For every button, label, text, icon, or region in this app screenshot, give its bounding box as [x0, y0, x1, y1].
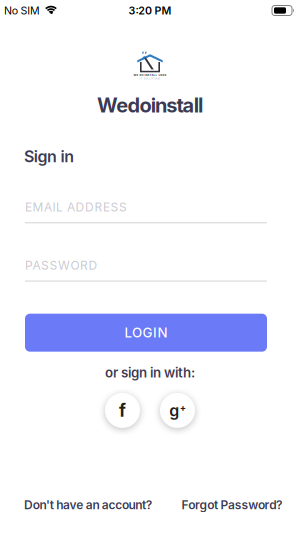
button[interactable]: LOGIN [25, 314, 267, 352]
staticText: Don't have an account? [24, 498, 153, 512]
button[interactable]: Don't have an account? [24, 498, 153, 512]
staticText: Wedoinstall [97, 93, 203, 117]
staticText: or sign in with: [105, 365, 195, 380]
staticText: + [180, 402, 186, 413]
button[interactable]: Sign in with Facebook [104, 392, 140, 428]
button[interactable]: Password [25, 258, 267, 282]
staticText: WE DO INSTALL USER [133, 73, 166, 76]
staticText: No SIM [4, 4, 40, 17]
staticText: Forgot Password? [181, 498, 283, 512]
staticText: Sign in [24, 147, 74, 166]
staticText: EMAIL ADDRESS [25, 200, 127, 214]
staticText: PASSWORD [25, 258, 97, 272]
staticText: f [119, 400, 126, 421]
button[interactable]: Forgot Password? [181, 498, 283, 512]
staticText: IT SOLUTIONS [139, 77, 160, 80]
staticText: 3:20 PM [129, 4, 171, 17]
button[interactable]: Email address [25, 200, 267, 223]
button[interactable]: Sign in with Google [159, 392, 195, 428]
staticText: LOGIN [124, 325, 167, 340]
staticText: g [169, 401, 179, 420]
